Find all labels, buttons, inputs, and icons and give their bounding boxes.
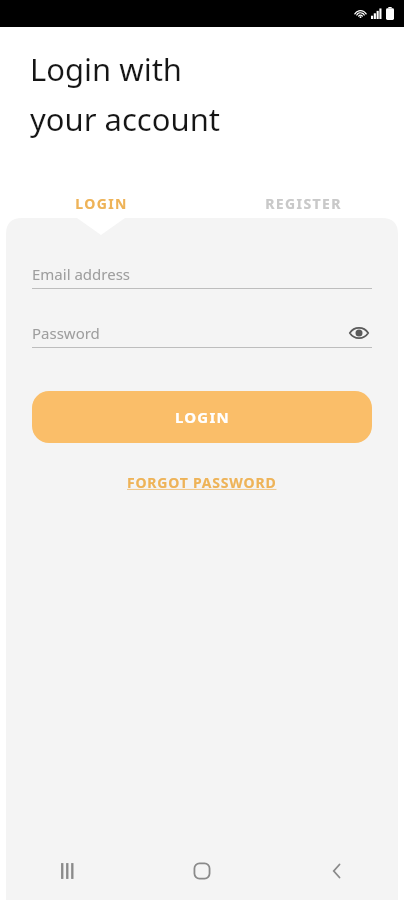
button[interactable]: FORGOT PASSWORD xyxy=(123,469,281,496)
staticText: Password xyxy=(32,323,100,343)
staticText: LOGIN xyxy=(175,407,230,427)
button[interactable]: Home xyxy=(134,842,269,900)
staticText: Email address xyxy=(32,264,131,284)
staticText: LOGIN xyxy=(75,194,128,213)
button[interactable]: Back xyxy=(269,842,404,900)
button[interactable]: LOGIN xyxy=(0,188,202,218)
button[interactable]: Show password xyxy=(346,320,372,346)
button[interactable]: REGISTER xyxy=(202,188,404,218)
staticText: FORGOT PASSWORD xyxy=(127,473,277,492)
button[interactable]: LOGIN xyxy=(32,391,372,443)
staticText: Login with xyxy=(30,48,182,90)
staticText: your account xyxy=(30,98,220,140)
staticText: REGISTER xyxy=(265,194,342,213)
button[interactable]: Recents xyxy=(0,842,134,900)
